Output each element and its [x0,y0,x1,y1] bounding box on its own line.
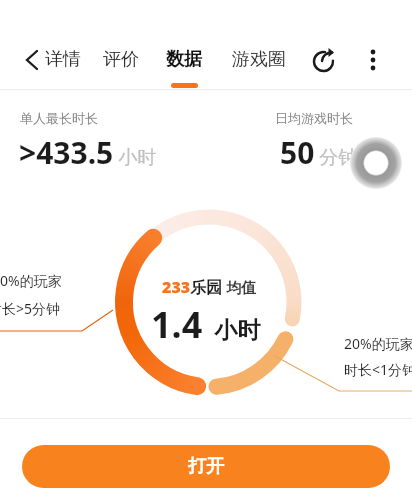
button[interactable] [362,46,386,74]
staticText: 20%的玩家 [344,334,412,353]
staticText: 时长<1分钟 [344,360,412,379]
staticText: 时长>5分钟 [0,299,61,318]
staticText: 详情 [45,48,81,71]
staticText: 1.4 小时 [151,300,261,349]
staticText: 游戏圈 [232,48,286,71]
button[interactable]: 游戏圈 [232,48,286,71]
staticText: 50 分钟 [280,132,358,173]
staticText: 233乐园 均值 [162,276,257,298]
button[interactable]: 详情 [45,48,81,71]
staticText: >433.5 小时 [19,132,157,173]
staticText: 评价 [103,48,139,71]
button[interactable]: 评价 [103,48,139,71]
button[interactable]: 数据 [166,48,202,71]
button[interactable] [310,46,338,74]
button[interactable] [20,46,48,74]
staticText: 数据 [166,48,202,71]
staticText: 打开 [188,455,224,478]
staticText: 20%的玩家 [0,271,62,290]
staticText: 日均游戏时长 [275,110,353,126]
button[interactable]: 打开 [22,445,390,488]
staticText: 单人最长时长 [20,110,98,126]
